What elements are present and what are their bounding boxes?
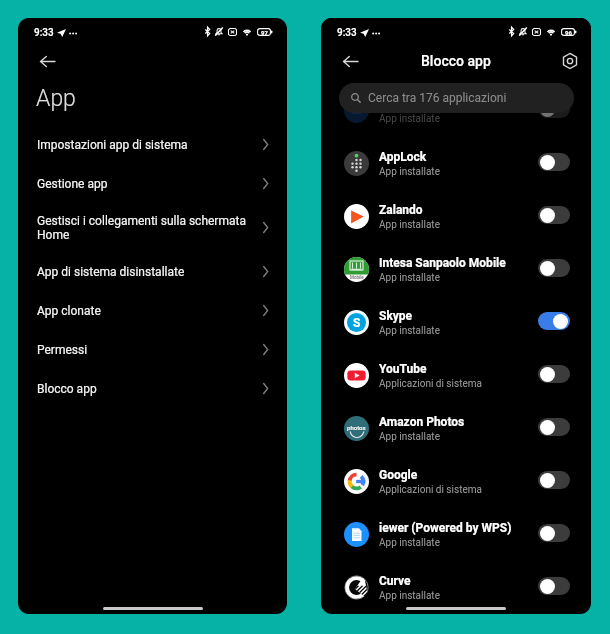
staticText: Gestione app: [37, 177, 261, 191]
button[interactable]: Mobile: [321, 243, 591, 296]
staticText: Google: [379, 468, 418, 482]
button[interactable]: photos: [321, 402, 591, 455]
staticText: Impostazioni app di sistema: [37, 138, 261, 152]
staticText: App installate: [379, 113, 440, 125]
staticText: App installate: [379, 431, 440, 443]
staticText: App installate: [379, 325, 440, 337]
button[interactable]: App di sistema disinstallate: [18, 252, 287, 291]
staticText: Skype: [379, 309, 413, 323]
button[interactable]: Permessi: [18, 330, 287, 369]
staticText: Intesa Sanpaolo Mobile: [379, 256, 506, 270]
button[interactable]: Cerca tra 176 applicazioni: [339, 83, 574, 113]
staticText: AppLock: [379, 150, 427, 164]
staticText: Booking.com: [379, 97, 451, 111]
button[interactable]: Off: [538, 577, 570, 595]
button[interactable]: App clonate: [18, 291, 287, 330]
staticText: App di sistema disinstallate: [37, 265, 261, 279]
button[interactable]: Zalando: [321, 190, 591, 243]
button[interactable]: iewer (Powered by WPS): [321, 508, 591, 561]
staticText: 97: [261, 29, 268, 36]
button[interactable]: Impostazioni app di sistema: [18, 125, 287, 164]
staticText: Permessi: [37, 343, 261, 357]
staticText: 9:33: [337, 27, 357, 39]
staticText: App installate: [379, 272, 440, 284]
staticText: Zalando: [379, 203, 423, 217]
staticText: Blocco app: [421, 53, 491, 69]
staticText: 9:33: [34, 27, 54, 39]
staticText: iewer (Powered by WPS): [379, 521, 512, 535]
button[interactable]: Off: [538, 418, 570, 436]
button[interactable]: Off: [538, 206, 570, 224]
button[interactable]: S: [321, 296, 591, 349]
staticText: Curve: [379, 574, 411, 588]
staticText: App installate: [379, 219, 440, 231]
button[interactable]: Back: [342, 54, 358, 69]
button[interactable]: On: [538, 312, 570, 330]
staticText: App installate: [379, 537, 440, 549]
button[interactable]: AppLock: [321, 137, 591, 190]
staticText: Applicazioni di sistema: [379, 378, 482, 390]
button[interactable]: Settings: [561, 52, 579, 70]
staticText: App installate: [379, 166, 440, 178]
staticText: 96: [565, 29, 572, 36]
button[interactable]: Gestione app: [18, 164, 287, 203]
button[interactable]: YouTube: [321, 349, 591, 402]
button[interactable]: Off: [538, 524, 570, 542]
staticText: App clonate: [37, 304, 261, 318]
staticText: Gestisci i collegamenti sulla schermata …: [37, 214, 261, 242]
button[interactable]: Gestisci i collegamenti sulla schermata …: [18, 203, 287, 252]
staticText: Cerca tra 176 applicazioni: [368, 91, 507, 105]
staticText: Mobile: [350, 275, 364, 280]
button[interactable]: Google: [321, 455, 591, 508]
staticText: Amazon Photos: [379, 415, 465, 429]
staticText: App installate: [379, 590, 440, 602]
staticText: Blocco app: [37, 382, 261, 396]
button[interactable]: Off: [538, 259, 570, 277]
staticText: App: [36, 85, 76, 112]
staticText: photos: [347, 424, 366, 431]
button[interactable]: Off: [538, 365, 570, 383]
staticText: Applicazioni di sistema: [379, 484, 482, 496]
button[interactable]: Blocco app: [18, 369, 287, 408]
button[interactable]: Off: [538, 471, 570, 489]
staticText: YouTube: [379, 362, 427, 376]
button[interactable]: Off: [538, 153, 570, 171]
button[interactable]: Curve: [321, 561, 591, 614]
button[interactable]: Off: [538, 100, 570, 118]
button[interactable]: Booking.com: [321, 84, 591, 137]
staticText: S: [353, 316, 361, 330]
button[interactable]: Back: [39, 54, 55, 69]
